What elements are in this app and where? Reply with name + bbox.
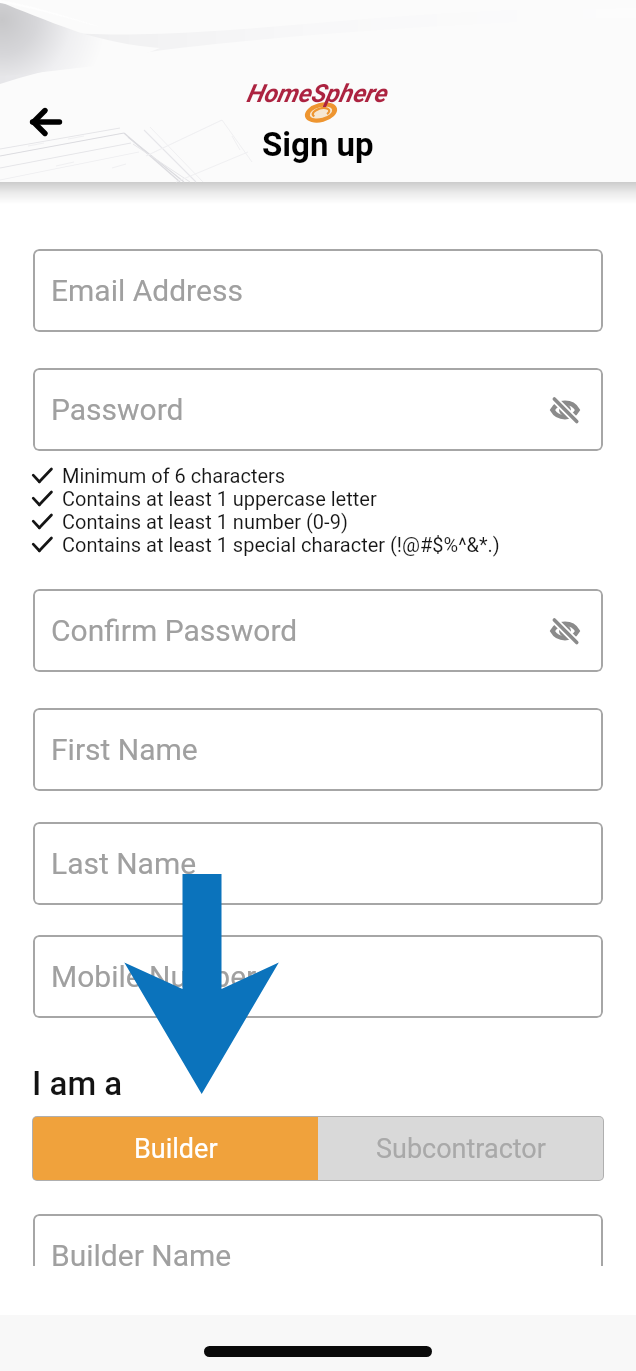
staticText: Subcontractor: [376, 1133, 546, 1165]
staticText: Last Name: [51, 846, 197, 881]
staticText: Contains at least 1 special character (!…: [62, 533, 500, 556]
staticText: First Name: [51, 732, 198, 767]
button[interactable]: First Name: [33, 708, 603, 791]
staticText: Email Address: [51, 273, 243, 308]
staticText: Minimum of 6 characters: [62, 464, 286, 487]
staticText: Password: [51, 392, 184, 427]
button[interactable]: Mobile Number: [33, 935, 603, 1018]
button[interactable]: Show password: [539, 384, 591, 436]
staticText: Contains at least 1 number (0-9): [62, 510, 348, 533]
staticText: Mobile Number: [51, 959, 257, 994]
button[interactable]: Builder: [33, 1117, 318, 1180]
staticText: I am a: [32, 1064, 123, 1103]
button[interactable]: Last Name: [33, 822, 603, 905]
button[interactable]: Show password: [539, 605, 591, 657]
staticText: Builder Name: [51, 1238, 232, 1266]
staticText: Builder: [134, 1133, 218, 1165]
button[interactable]: Email Address: [33, 249, 603, 332]
staticText: Sign up: [262, 125, 374, 164]
staticText: HomeSphere: [246, 79, 386, 108]
button[interactable]: Back: [14, 92, 74, 152]
button[interactable]: Confirm Password: [33, 589, 603, 672]
button[interactable]: Password: [33, 368, 603, 451]
button[interactable]: Builder Name: [33, 1214, 603, 1266]
button[interactable]: Subcontractor: [318, 1117, 603, 1180]
staticText: Contains at least 1 uppercase letter: [62, 487, 377, 510]
staticText: Confirm Password: [51, 613, 298, 648]
